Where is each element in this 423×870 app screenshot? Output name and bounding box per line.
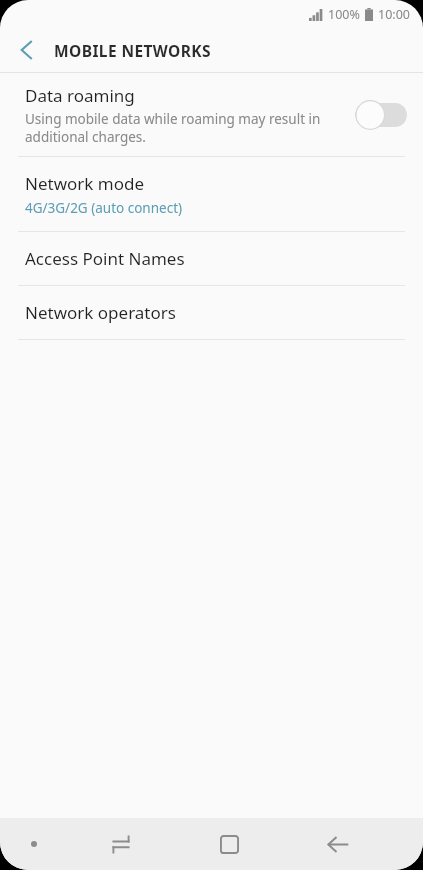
button[interactable]: Back <box>283 818 391 870</box>
staticText: 100% <box>328 6 360 23</box>
button[interactable]: Recents <box>67 818 175 870</box>
button[interactable]: Access Point Names <box>0 232 423 285</box>
staticText: Network mode <box>25 172 145 195</box>
staticText: Using mobile data while roaming may resu… <box>25 110 345 146</box>
button[interactable]: Data roaming <box>0 73 423 156</box>
staticText: Access Point Names <box>25 247 185 270</box>
staticText: MOBILE NETWORKS <box>54 40 211 61</box>
button[interactable]: Menu <box>0 818 67 870</box>
button[interactable]: Data roaming toggle <box>355 98 407 132</box>
staticText: Network operators <box>25 301 176 324</box>
staticText: 4G/3G/2G (auto connect) <box>25 199 183 217</box>
button[interactable]: Network operators <box>0 286 423 339</box>
staticText: 10:00 <box>378 6 410 23</box>
staticText: Data roaming <box>25 84 135 107</box>
button[interactable]: Network mode <box>0 157 423 231</box>
button[interactable]: Home <box>175 818 283 870</box>
button[interactable]: Back <box>8 32 44 68</box>
